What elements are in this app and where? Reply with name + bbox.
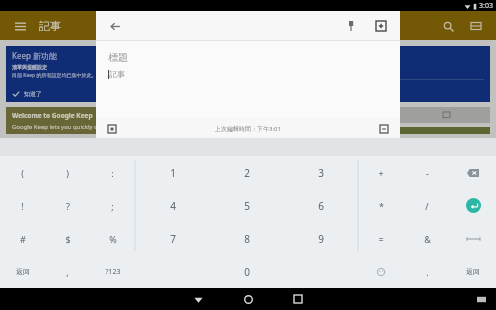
button[interactable]: &: [404, 222, 450, 255]
button[interactable]: 3: [284, 156, 358, 189]
staticText: 6: [318, 199, 324, 213]
button[interactable]: Switch view: [465, 15, 487, 37]
staticText: 清單與提醒設定: [12, 64, 47, 70]
button[interactable]: 8: [210, 222, 284, 255]
button[interactable]: Back: [104, 15, 126, 37]
button[interactable]: 6: [284, 189, 358, 222]
button[interactable]: (: [0, 156, 45, 189]
button[interactable]: Home: [235, 288, 261, 310]
staticText: =: [378, 233, 384, 245]
staticText: $: [65, 233, 71, 245]
staticText: Welcome to Google Keep: [12, 111, 93, 120]
button[interactable]: 和預設的上午/下午/傍晚提醒時: [250, 46, 490, 102]
button[interactable]: Open navigation drawer: [9, 15, 31, 37]
staticText: ,: [66, 266, 69, 278]
staticText: 0: [244, 265, 250, 279]
button[interactable]: Keep 新功能: [6, 46, 245, 102]
button[interactable]: 5: [210, 189, 284, 222]
staticText: ;: [111, 200, 114, 212]
staticText: 4: [170, 199, 176, 213]
button[interactable]: 2: [210, 156, 284, 189]
staticText: 3:03: [479, 1, 493, 11]
button[interactable]: =: [358, 222, 404, 255]
staticText: 返回: [466, 267, 480, 276]
staticText: /: [425, 200, 429, 212]
button[interactable]: Add: [103, 120, 121, 138]
button[interactable]: 0: [210, 255, 284, 288]
staticText: and You can always search: [254, 129, 329, 132]
staticText: 返回: [16, 267, 30, 276]
button[interactable]: ): [45, 156, 90, 189]
staticText: .: [426, 266, 429, 278]
button[interactable]: New note option: [389, 109, 401, 121]
button[interactable]: .: [404, 255, 450, 288]
button[interactable]: ,: [45, 255, 90, 288]
button[interactable]: $: [45, 222, 90, 255]
staticText: Keep 新功能: [12, 50, 57, 61]
button[interactable]: Back: [185, 288, 211, 310]
button[interactable]: Pin note: [340, 15, 362, 37]
staticText: 記事: [39, 19, 61, 33]
staticText: 上次編輯時間：下午3:01: [215, 125, 281, 133]
staticText: 8: [244, 232, 250, 246]
button[interactable]: *: [358, 189, 404, 222]
staticText: 1: [170, 166, 176, 180]
button[interactable]: 返回: [0, 255, 45, 288]
button[interactable]: !: [0, 189, 45, 222]
button[interactable]: Search: [437, 15, 459, 37]
button[interactable]: #: [0, 222, 45, 255]
staticText: 標題: [108, 51, 128, 64]
staticText: Google Keep lets you quickly capture wha…: [12, 123, 116, 130]
staticText: 3: [318, 166, 324, 180]
button[interactable]: ;: [90, 189, 135, 222]
button[interactable]: Backspace: [450, 156, 496, 189]
staticText: 記事: [109, 69, 125, 79]
staticText: 5: [244, 199, 250, 213]
button[interactable]: and You can always search: [250, 127, 490, 134]
button[interactable]: New note option: [440, 109, 452, 121]
staticText: *: [379, 200, 384, 212]
staticText: &: [424, 233, 431, 245]
staticText: 9: [318, 232, 324, 246]
button[interactable]: %: [90, 222, 135, 255]
staticText: :: [111, 167, 114, 179]
button[interactable]: 4: [135, 189, 210, 222]
button[interactable]: /: [404, 189, 450, 222]
staticText: #: [20, 233, 26, 245]
staticText: -: [426, 167, 429, 179]
button[interactable]: Recent apps: [285, 288, 311, 310]
button[interactable]: Welcome to Google Keep: [6, 107, 245, 134]
staticText: (: [21, 167, 24, 179]
staticText: 7: [170, 232, 176, 246]
staticText: 2: [244, 166, 250, 180]
button[interactable]: :: [90, 156, 135, 189]
staticText: 知道了: [24, 90, 42, 98]
button[interactable]: ?: [45, 189, 90, 222]
staticText: ?: [66, 200, 70, 212]
button[interactable]: More options: [375, 120, 393, 138]
button[interactable]: 返回: [450, 255, 496, 288]
staticText: 目前 Keep 的所有設定均已集中於此。: [12, 72, 97, 79]
staticText: %: [109, 233, 117, 245]
button[interactable]: Hide keyboard: [472, 290, 490, 308]
button[interactable]: Space: [450, 222, 496, 255]
button[interactable]: ?123: [90, 255, 135, 288]
button[interactable]: Enter: [450, 189, 496, 222]
staticText: !: [21, 200, 24, 212]
button[interactable]: Emoji: [358, 255, 404, 288]
button[interactable]: 1: [135, 156, 210, 189]
button[interactable]: -: [404, 156, 450, 189]
button[interactable]: +: [358, 156, 404, 189]
staticText: +: [378, 167, 384, 179]
button[interactable]: 7: [135, 222, 210, 255]
staticText: ): [66, 167, 69, 179]
button[interactable]: Archive: [370, 15, 392, 37]
staticText: ?123: [105, 267, 121, 277]
button[interactable]: 9: [284, 222, 358, 255]
